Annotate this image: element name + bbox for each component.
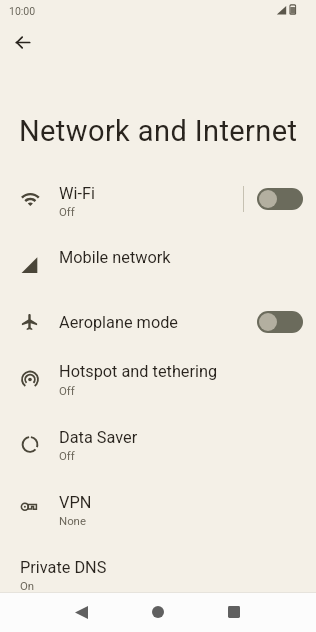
- button[interactable]: [0, 350, 316, 406]
- button[interactable]: Home: [134, 592, 182, 632]
- staticText: Aeroplane mode: [59, 313, 179, 332]
- button[interactable]: [0, 301, 316, 349]
- button[interactable]: Wi-Fi toggle: [257, 188, 303, 210]
- staticText: Off: [59, 449, 75, 462]
- staticText: Mobile network: [59, 248, 171, 267]
- button[interactable]: [0, 171, 316, 227]
- button[interactable]: Back: [5, 24, 42, 61]
- button[interactable]: Aeroplane mode toggle: [257, 311, 303, 333]
- button[interactable]: [0, 415, 316, 471]
- button[interactable]: Recent apps: [210, 592, 258, 632]
- staticText: VPN: [59, 493, 92, 512]
- button[interactable]: [0, 480, 316, 536]
- staticText: 10:00: [9, 5, 36, 17]
- staticText: Private DNS: [20, 558, 107, 577]
- staticText: Hotspot and tethering: [59, 362, 218, 381]
- staticText: Data Saver: [59, 428, 138, 447]
- button[interactable]: [0, 236, 316, 284]
- staticText: Wi-Fi: [59, 184, 95, 203]
- staticText: Off: [59, 205, 75, 218]
- button[interactable]: Back: [57, 592, 105, 632]
- staticText: Off: [59, 384, 75, 397]
- button[interactable]: [0, 545, 316, 601]
- staticText: None: [59, 514, 86, 527]
- staticText: Network and Internet: [19, 114, 298, 148]
- staticText: On: [20, 579, 35, 592]
